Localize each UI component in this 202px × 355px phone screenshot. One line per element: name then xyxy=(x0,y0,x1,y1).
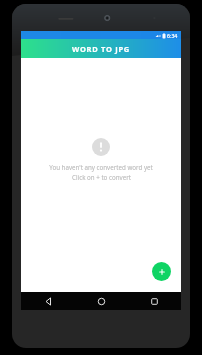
button[interactable]: Home xyxy=(75,292,128,310)
staticText: WORD TO JPG xyxy=(72,44,130,54)
button[interactable]: Back xyxy=(21,292,75,310)
staticText: You haven't any converted word yet xyxy=(49,163,153,171)
staticText: Click on + to convert xyxy=(72,173,131,181)
button[interactable]: Convert new file xyxy=(152,262,171,281)
button[interactable]: Recents xyxy=(128,292,181,310)
staticText: 6:34 xyxy=(167,32,178,39)
